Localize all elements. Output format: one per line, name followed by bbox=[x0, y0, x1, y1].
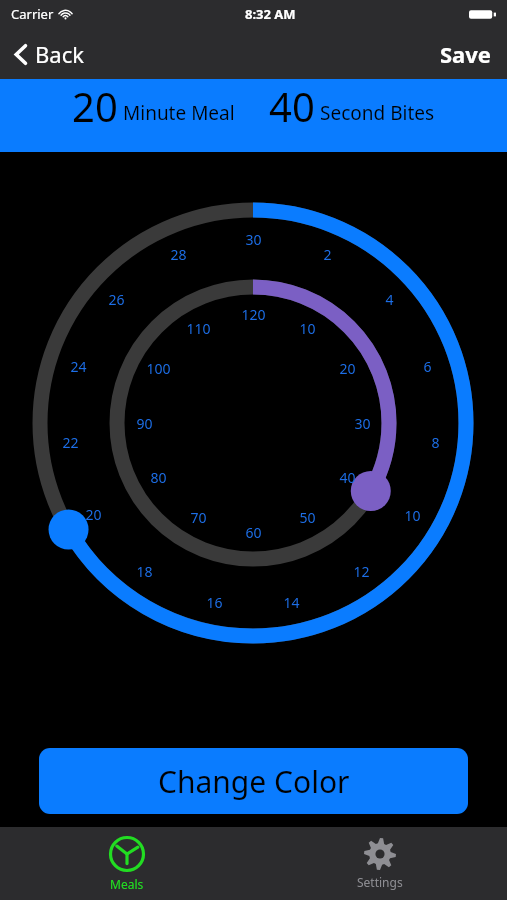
staticText: 40 bbox=[339, 468, 356, 487]
staticText: 20 bbox=[85, 505, 102, 524]
staticText: 30 bbox=[245, 230, 262, 249]
staticText: 100 bbox=[146, 359, 171, 378]
staticText: 60 bbox=[245, 523, 262, 542]
staticText: Carrier bbox=[11, 5, 54, 23]
staticText: 28 bbox=[170, 245, 187, 264]
staticText: 20 bbox=[72, 79, 118, 132]
staticText: 30 bbox=[354, 414, 371, 433]
staticText: 120 bbox=[241, 305, 266, 324]
staticText: 2 bbox=[323, 245, 332, 264]
staticText: Back bbox=[35, 39, 84, 69]
staticText: Meals bbox=[110, 876, 144, 892]
button[interactable]: Meals bbox=[0, 827, 253, 900]
staticText: 14 bbox=[283, 593, 300, 612]
staticText: 12 bbox=[353, 562, 370, 581]
button[interactable]: Settings bbox=[253, 827, 507, 900]
other: Settings bbox=[363, 837, 397, 871]
staticText: 10 bbox=[404, 506, 421, 525]
staticText: 8:32 AM bbox=[245, 5, 296, 23]
staticText: 50 bbox=[299, 508, 316, 527]
staticText: Minute Meal bbox=[123, 100, 235, 126]
button[interactable]: Save bbox=[434, 31, 497, 77]
staticText: 16 bbox=[206, 593, 223, 612]
staticText: 8 bbox=[431, 433, 440, 452]
staticText: 90 bbox=[136, 414, 153, 433]
button[interactable]: Back bbox=[8, 31, 90, 77]
staticText: 40 bbox=[269, 79, 315, 132]
staticText: 20 bbox=[339, 359, 356, 378]
staticText: 110 bbox=[186, 319, 211, 338]
staticText: 10 bbox=[299, 319, 316, 338]
button[interactable]: Change Color bbox=[39, 748, 468, 814]
staticText: 22 bbox=[62, 433, 79, 452]
staticText: Save bbox=[440, 39, 491, 69]
staticText: 4 bbox=[385, 290, 394, 309]
staticText: Settings bbox=[357, 874, 403, 890]
staticText: 26 bbox=[108, 290, 125, 309]
staticText: Second Bites bbox=[320, 100, 435, 126]
staticText: 6 bbox=[423, 357, 432, 376]
staticText: Change Color bbox=[158, 761, 350, 802]
staticText: 24 bbox=[70, 357, 87, 376]
staticText: 18 bbox=[136, 562, 153, 581]
staticText: 80 bbox=[150, 468, 167, 487]
staticText: 70 bbox=[190, 508, 207, 527]
